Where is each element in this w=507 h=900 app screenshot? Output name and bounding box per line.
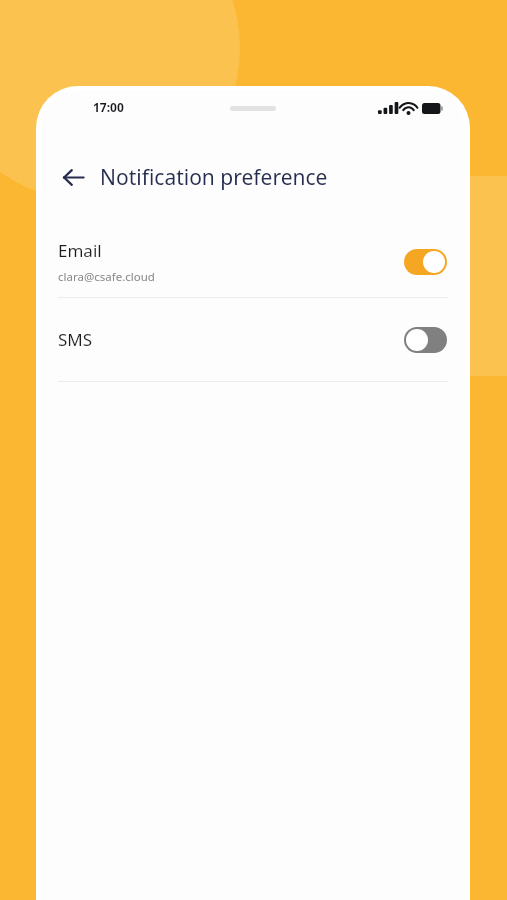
button[interactable]: Back [56, 160, 90, 194]
button[interactable]: Email [41, 226, 465, 297]
staticText: Email [58, 239, 102, 262]
button[interactable]: SMS [41, 298, 465, 381]
staticText: Notification preference [100, 163, 328, 192]
button[interactable]: Off [404, 327, 447, 353]
staticText: 17:00 [93, 99, 124, 115]
staticText: SMS [58, 328, 93, 351]
staticText: clara@csafe.cloud [58, 269, 155, 285]
button[interactable]: On [404, 249, 447, 275]
